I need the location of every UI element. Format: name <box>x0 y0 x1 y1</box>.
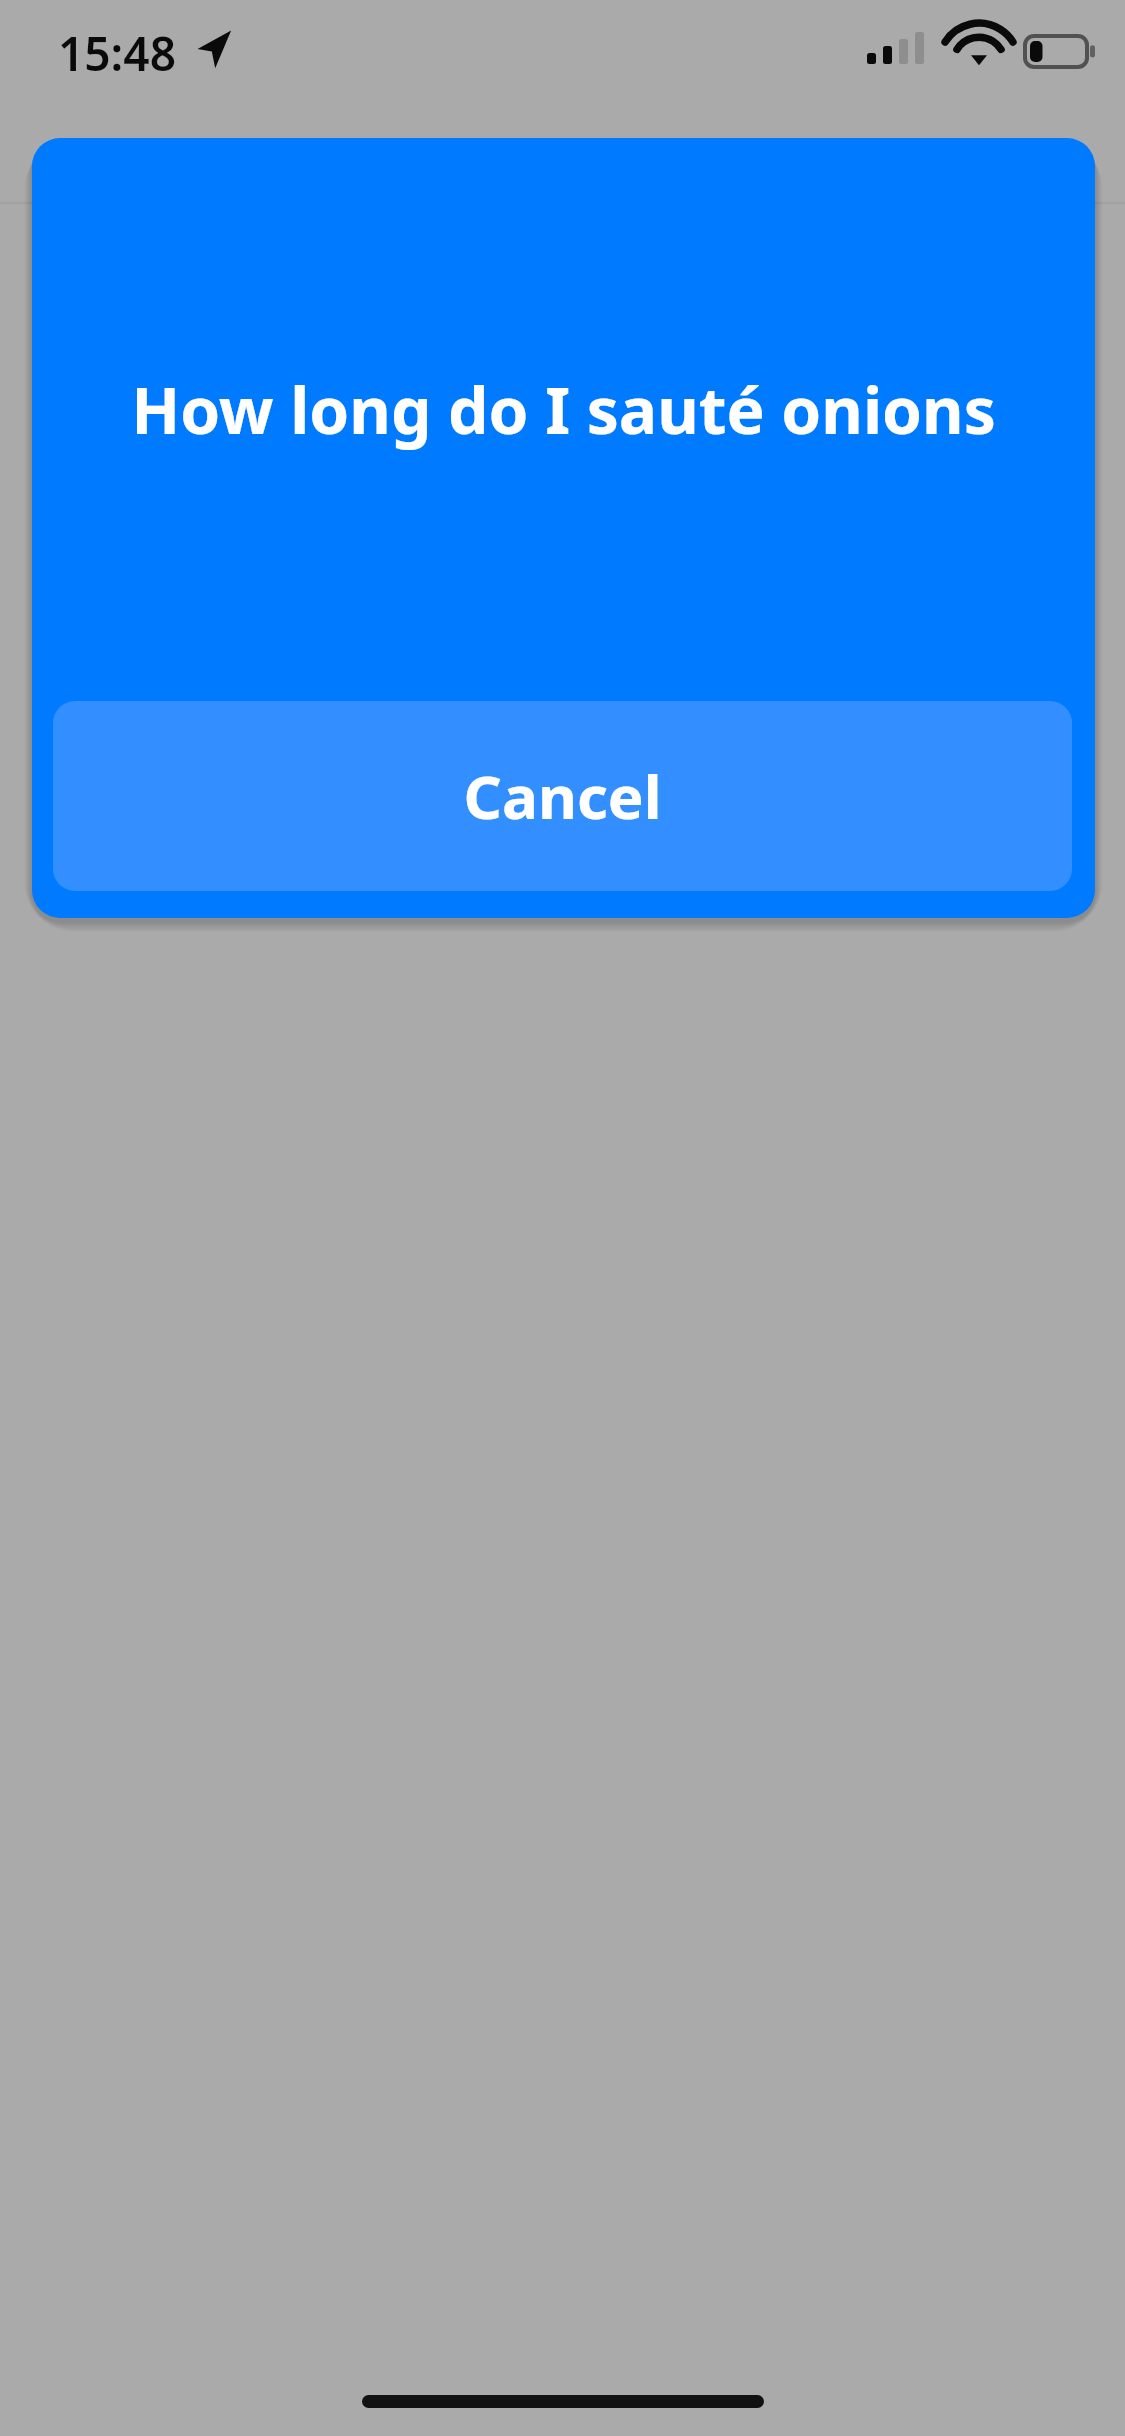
staticText: How long do I sauté onions <box>72 366 1055 453</box>
staticText: Cancel <box>463 755 662 837</box>
button[interactable]: Cancel <box>53 701 1072 891</box>
staticText: 15:48 <box>58 22 176 85</box>
